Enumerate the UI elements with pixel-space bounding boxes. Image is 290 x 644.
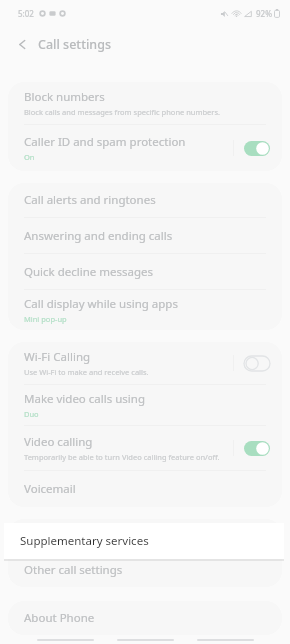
button[interactable]: Block numbers (8, 82, 282, 124)
button[interactable]: Back (10, 32, 34, 56)
staticText: Use Wi-Fi to make and receive calls. (24, 367, 149, 377)
button[interactable]: Home (105, 635, 185, 644)
button[interactable]: Wi-Fi Calling (8, 342, 282, 384)
staticText: Call alerts and ringtones (24, 192, 156, 208)
staticText: Make video calls using (24, 391, 145, 407)
staticText: Temporarily be able to turn Video callin… (24, 452, 220, 462)
button[interactable]: Answering and ending calls (8, 218, 282, 253)
button[interactable]: Caller ID and spam protection (8, 125, 282, 171)
button[interactable]: About Phone (8, 601, 282, 635)
button[interactable]: Recents (25, 635, 105, 644)
staticText: Supplementary services (24, 528, 153, 544)
staticText: Block calls and messages from specific p… (24, 107, 221, 117)
staticText: On (24, 152, 35, 162)
staticText: Quick decline messages (24, 264, 154, 280)
staticText: Wi-Fi Calling (24, 349, 91, 365)
button[interactable]: Make video calls using (8, 385, 282, 425)
button[interactable]: Back (185, 635, 265, 644)
button[interactable]: Wi-Fi Calling toggle (244, 356, 270, 371)
staticText: Answering and ending calls (24, 228, 173, 244)
button[interactable]: Call alerts and ringtones (8, 183, 282, 217)
staticText: Voicemail (24, 481, 76, 497)
button[interactable]: Quick decline messages (8, 254, 282, 289)
button[interactable]: Call display while using apps (8, 290, 282, 330)
staticText: Caller ID and spam protection (24, 134, 186, 150)
button[interactable]: Other call settings (8, 553, 282, 587)
staticText: 92% (256, 8, 272, 19)
staticText: Duo (24, 409, 39, 419)
button[interactable]: Supplementary services (4, 523, 284, 559)
staticText: Supplementary services (20, 533, 149, 549)
staticText: Call settings (38, 36, 111, 53)
button[interactable]: Video calling (8, 426, 282, 470)
staticText: 5:02 (18, 8, 34, 19)
button[interactable]: Voicemail (8, 471, 282, 507)
staticText: Block numbers (24, 89, 105, 105)
button[interactable]: Caller ID and spam protection toggle (244, 141, 270, 156)
staticText: Video calling (24, 434, 93, 450)
staticText: About Phone (24, 610, 95, 626)
staticText: Call display while using apps (24, 296, 178, 312)
button[interactable]: Supplementary services (8, 519, 282, 553)
staticText: Mini pop-up (24, 314, 67, 324)
button[interactable]: Video calling toggle (244, 441, 270, 456)
staticText: Other call settings (24, 562, 123, 578)
